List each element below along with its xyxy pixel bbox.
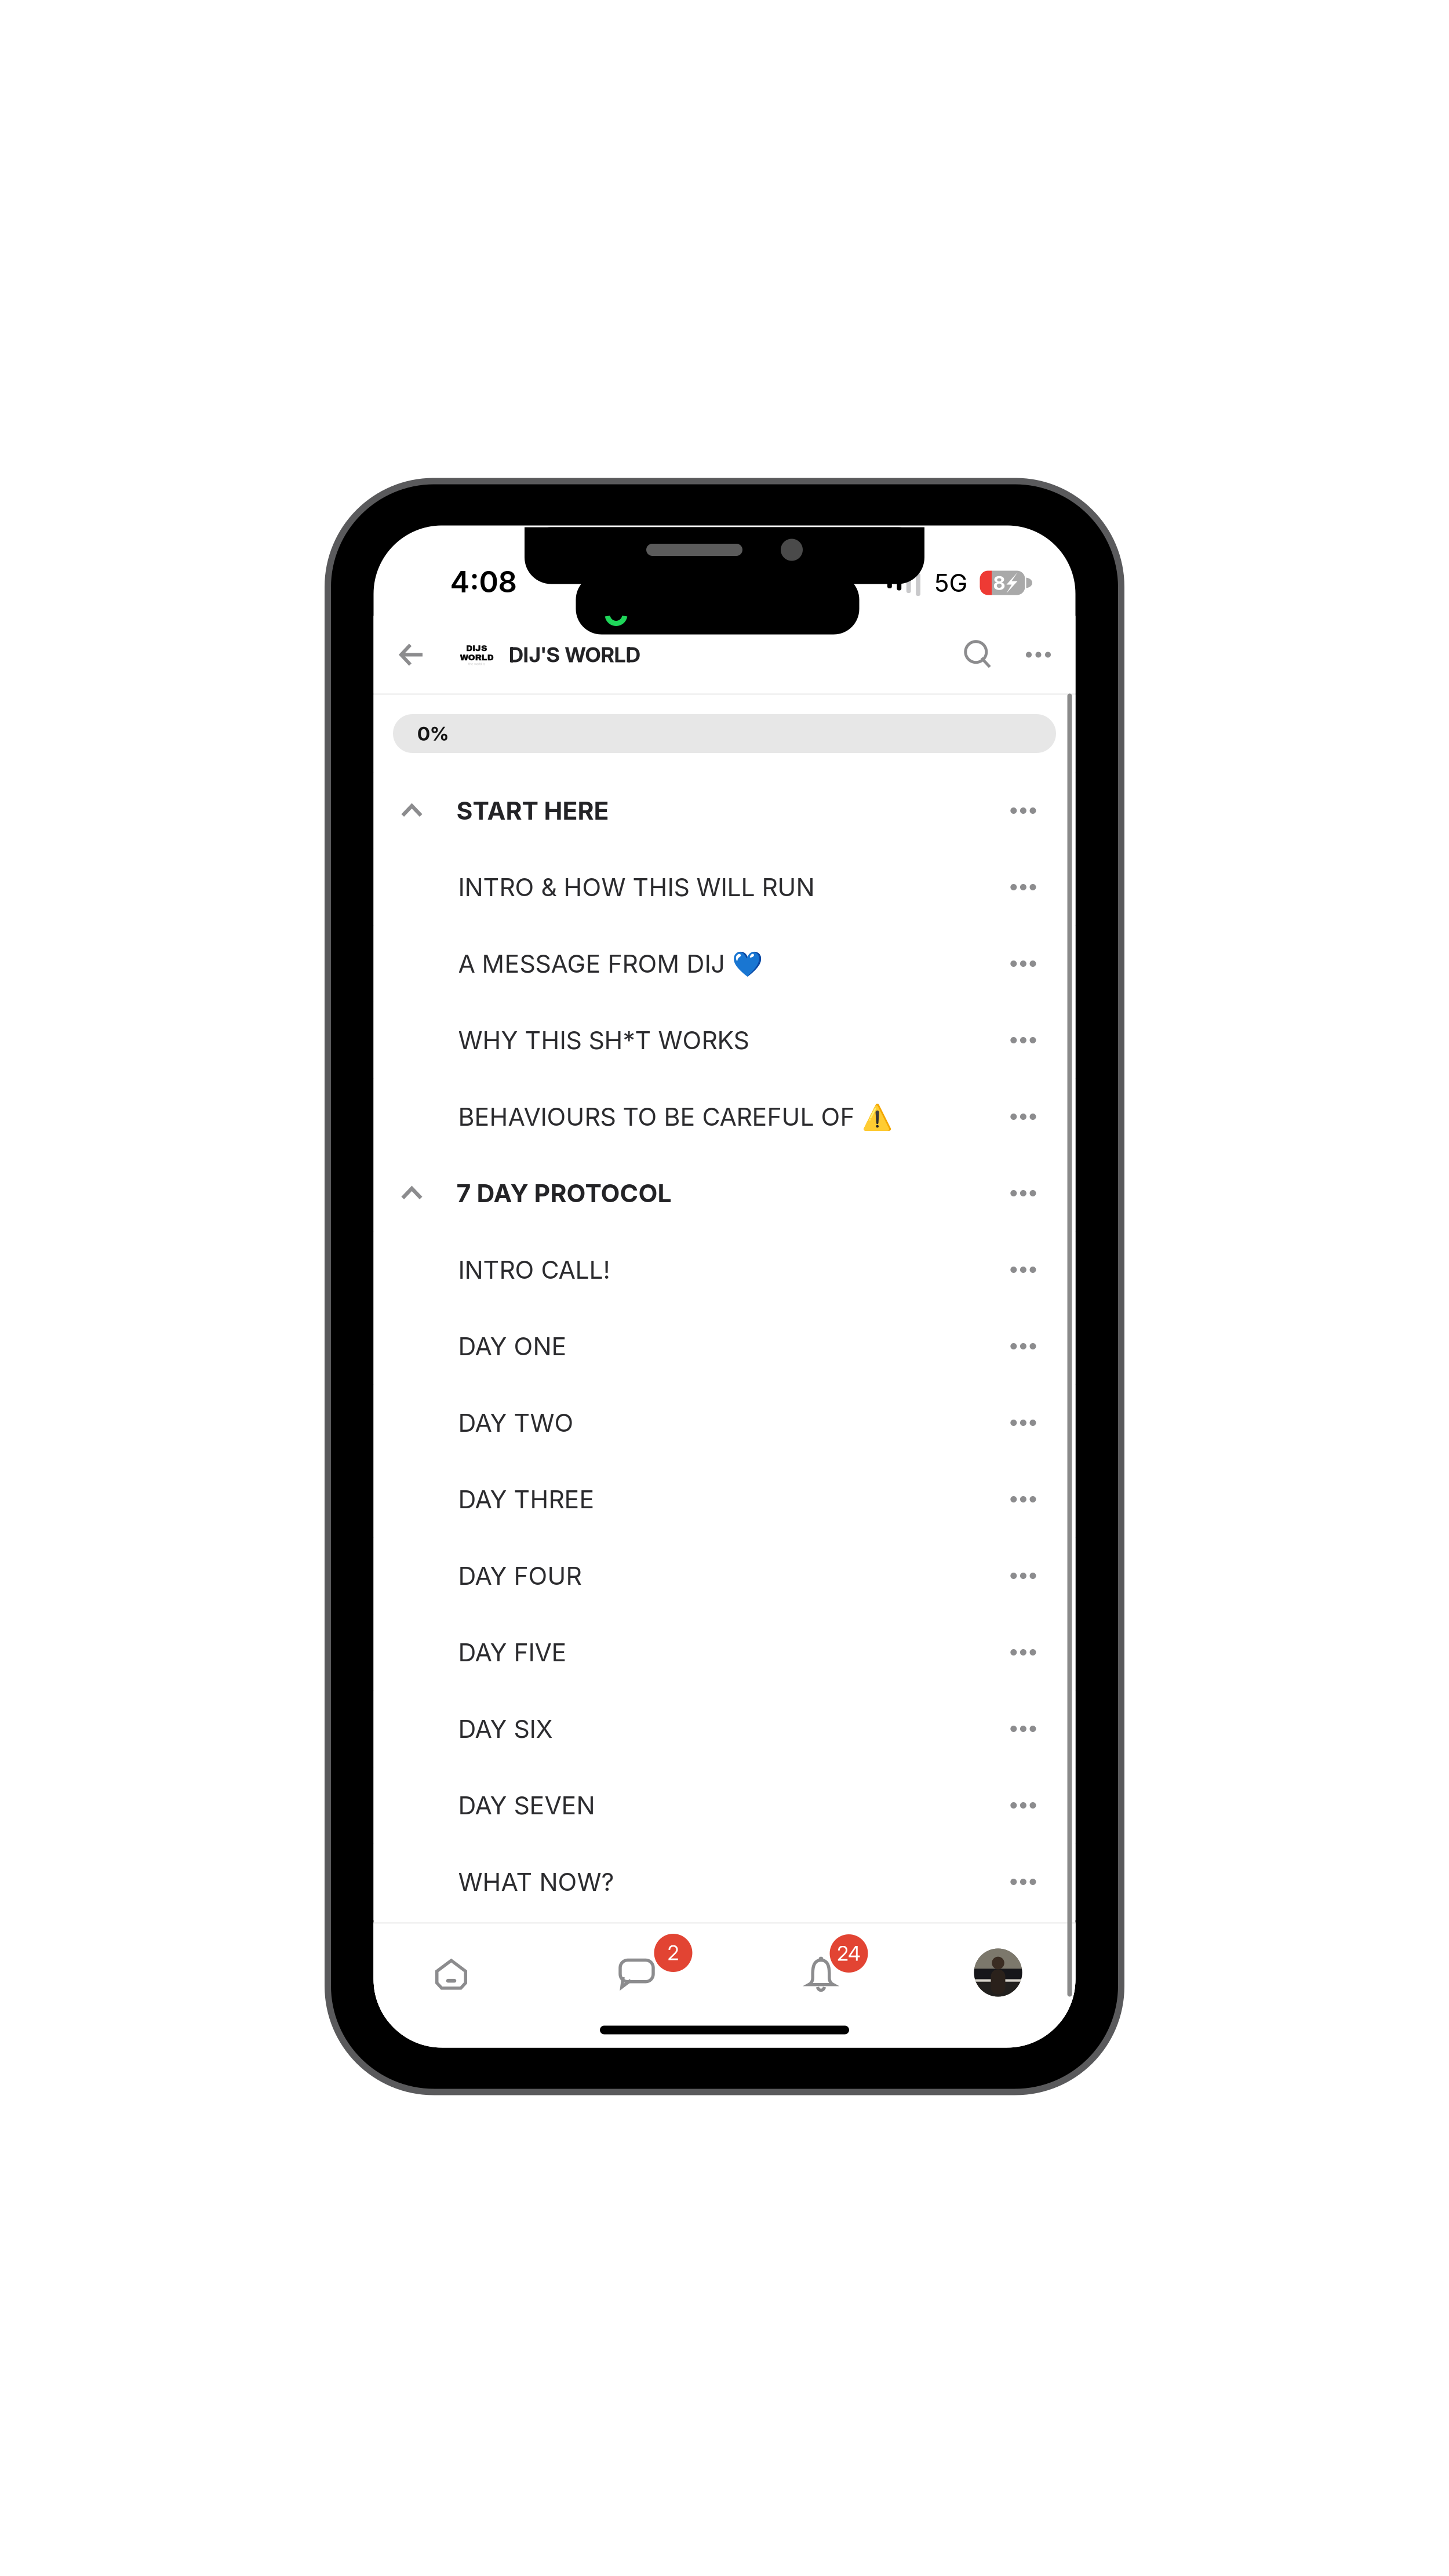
staticText: INTRO CALL! [458, 1255, 610, 1285]
staticText: DAY SIX [458, 1714, 553, 1744]
button[interactable]: DAY SIX [374, 1691, 1075, 1767]
staticText: DAY SEVEN [458, 1790, 595, 1820]
button[interactable]: Home [374, 1924, 529, 2022]
button[interactable]: BEHAVIOURS TO BE CAREFUL OF ⚠️ [374, 1078, 1075, 1155]
button[interactable]: INTRO & HOW THIS WILL RUN [374, 849, 1075, 925]
staticText: WORLD [460, 653, 494, 662]
button[interactable]: Messages, 2 unread [529, 1924, 712, 2022]
staticText: 8 [993, 571, 1005, 594]
staticText: 5G [934, 568, 968, 598]
staticText: 0% [417, 722, 449, 745]
staticText: DIJS [466, 644, 487, 653]
button[interactable]: INTRO CALL! [374, 1231, 1075, 1308]
staticText: DAY FIVE [458, 1637, 567, 1667]
button[interactable]: More options [1011, 616, 1066, 694]
button[interactable]: Profile [893, 1924, 1075, 2022]
button[interactable]: WHAT NOW? [374, 1844, 1075, 1920]
staticText: DAY THREE [458, 1484, 594, 1514]
button[interactable]: A MESSAGE FROM DIJ 💙 [374, 925, 1075, 1002]
staticText: WHAT NOW? [458, 1867, 614, 1897]
button[interactable]: START HERE [374, 772, 1075, 849]
button[interactable]: Back [386, 616, 437, 694]
button[interactable]: WHY THIS SH*T WORKS [374, 1002, 1075, 1078]
staticText: DIJ'S WORLD [509, 642, 640, 667]
button[interactable]: DAY ONE [374, 1308, 1075, 1385]
staticText: BEHAVIOURS TO BE CAREFUL OF ⚠️ [458, 1102, 892, 1132]
button[interactable]: DAY SEVEN [374, 1767, 1075, 1844]
staticText: WHY THIS SH*T WORKS [458, 1025, 749, 1055]
button[interactable]: 7 DAY PROTOCOL [374, 1155, 1075, 1231]
staticText: INTRO & HOW THIS WILL RUN [458, 872, 815, 902]
button[interactable]: Notifications, 24 new [712, 1924, 893, 2022]
staticText: 4:08 [450, 564, 517, 599]
staticText: START HERE [456, 796, 609, 826]
staticText: 2 [667, 1941, 679, 1965]
staticText: DAY TWO [458, 1408, 574, 1438]
button[interactable]: DAY FIVE [374, 1614, 1075, 1691]
staticText: the world is [468, 662, 485, 666]
staticText: DAY FOUR [458, 1561, 582, 1591]
button[interactable]: DAY TWO [374, 1385, 1075, 1461]
button[interactable]: Search [949, 616, 1011, 694]
staticText: 7 DAY PROTOCOL [456, 1178, 671, 1208]
staticText: DAY ONE [458, 1331, 567, 1361]
button[interactable]: DAY FOUR [374, 1538, 1075, 1614]
staticText: A MESSAGE FROM DIJ 💙 [458, 949, 762, 979]
staticText: 24 [837, 1941, 861, 1966]
button[interactable]: DAY THREE [374, 1461, 1075, 1538]
